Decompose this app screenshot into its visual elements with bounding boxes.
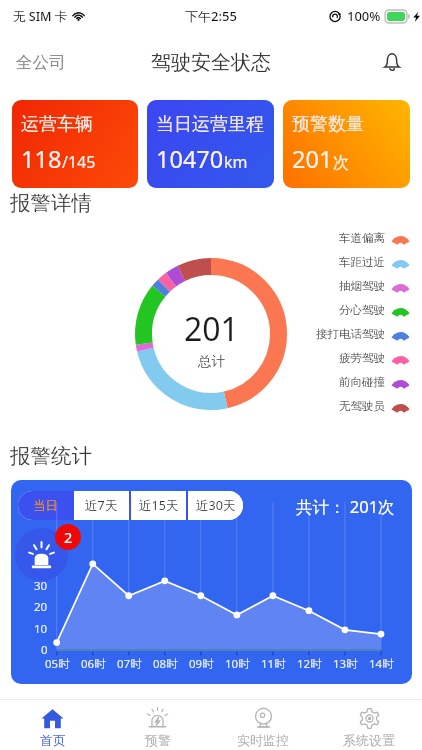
staticText: 总计 [198,353,225,370]
staticText: 近15天 [139,497,179,514]
staticText: 全公司 [16,52,66,73]
staticText: 10时 [225,656,250,672]
staticText: 报警详情 [10,190,92,216]
staticText: 近7天 [85,497,118,514]
staticText: 201 [292,143,333,175]
staticText: 10 [34,621,48,637]
staticText: 10470 [156,143,224,175]
staticText: 系统设置 [343,732,395,748]
button[interactable]: 预警 [105,700,210,750]
staticText: 2 [64,527,73,547]
button[interactable]: 全公司 [15,46,67,79]
staticText: 当日 [33,498,58,514]
button[interactable]: 近7天 [74,491,129,520]
staticText: 次 [333,153,349,173]
staticText: 100% [347,7,381,25]
staticText: 预警数量 [292,113,364,136]
staticText: 14时 [369,656,394,672]
button[interactable]: 预警数量 [283,100,410,188]
button[interactable]: 近30天 [188,491,243,520]
staticText: 疲劳驾驶 [339,351,385,365]
staticText: 05时 [45,656,70,672]
staticText: 报警统计 [10,443,92,469]
staticText: 共计： 201次 [296,495,395,518]
button[interactable]: 当日运营里程 [147,100,274,188]
staticText: 11时 [261,656,286,672]
button[interactable]: 运营车辆 [12,100,138,188]
staticText: 08时 [153,656,178,672]
staticText: 0 [41,642,48,658]
staticText: 06时 [81,656,106,672]
staticText: 实时监控 [237,732,289,748]
staticText: 车距过近 [339,255,385,269]
button[interactable]: 首页 [0,700,105,750]
staticText: 当日运营里程 [156,113,264,136]
staticText: 前向碰撞 [339,375,385,389]
staticText: 驾驶安全状态 [151,50,271,75]
staticText: 分心驾驶 [339,303,385,317]
staticText: 近30天 [196,497,236,514]
staticText: 运营车辆 [21,113,93,136]
staticText: 无 SIM 卡 [13,8,68,25]
staticText: 13时 [333,656,358,672]
button[interactable]: 系统设置 [316,700,422,750]
button[interactable]: 当日 [18,491,72,520]
staticText: km [224,151,248,173]
button[interactable]: 通知 [376,46,408,78]
staticText: 车道偏离 [339,231,385,245]
staticText: 201 [184,307,239,351]
staticText: 09时 [189,656,214,672]
staticText: 20 [34,599,48,615]
staticText: 下午2:55 [185,7,237,25]
staticText: 抽烟驾驶 [339,279,385,293]
staticText: 118 [21,143,62,175]
staticText: 30 [34,578,48,594]
staticText: 预警 [145,732,171,748]
staticText: 首页 [40,732,66,748]
button[interactable]: 近15天 [131,491,186,520]
button[interactable]: 实时监控 [210,700,316,750]
staticText: 接打电话驾驶 [316,327,385,341]
staticText: /145 [62,151,96,173]
staticText: 12时 [297,656,322,672]
staticText: 07时 [117,656,142,672]
staticText: 无驾驶员 [339,399,385,413]
